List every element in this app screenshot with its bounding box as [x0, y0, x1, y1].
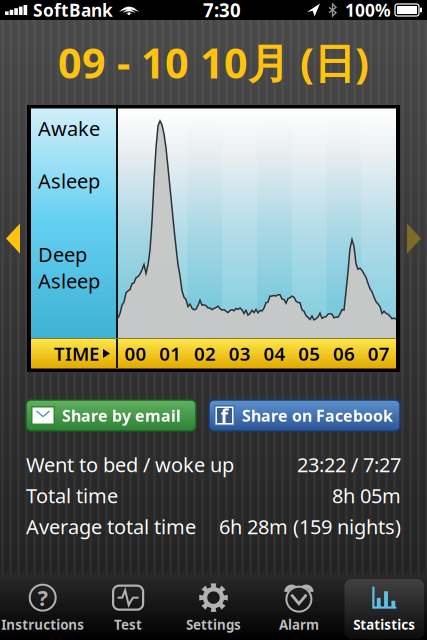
- staticText: 6h 28m (159 nights): [219, 513, 401, 540]
- staticText: 8h 05m: [332, 482, 401, 509]
- button[interactable]: ?: [0, 575, 85, 640]
- staticText: Share by email: [62, 405, 181, 426]
- staticText: 7:30: [203, 0, 241, 22]
- staticText: Test: [114, 616, 142, 633]
- staticText: Statistics: [353, 616, 415, 633]
- staticText: Went to bed / woke up: [26, 451, 234, 478]
- staticText: f: [220, 402, 228, 429]
- staticText: Awake: [38, 115, 100, 142]
- staticText: 06: [333, 341, 355, 366]
- staticText: ?: [38, 583, 48, 612]
- staticText: Asleep: [38, 267, 100, 294]
- staticText: 05: [298, 341, 320, 366]
- staticText: Share on Facebook: [242, 405, 393, 426]
- button[interactable]: Alarm: [256, 575, 342, 640]
- staticText: Average total time: [26, 513, 196, 540]
- staticText: 09 - 10 10月 (日): [58, 35, 369, 90]
- staticText: 07: [368, 341, 390, 366]
- button[interactable]: Statistics: [342, 575, 427, 640]
- staticText: 100%: [345, 0, 391, 21]
- button[interactable]: f: [209, 400, 400, 431]
- staticText: Alarm: [279, 616, 319, 633]
- button[interactable]: Share by email: [26, 400, 196, 431]
- staticText: Deep: [38, 241, 87, 267]
- staticText: 04: [263, 341, 285, 366]
- staticText: 03: [229, 341, 251, 366]
- button[interactable]: Previous night: [0, 223, 26, 253]
- staticText: 00: [124, 341, 146, 366]
- button[interactable]: Test: [85, 575, 171, 640]
- staticText: 01: [159, 341, 181, 366]
- staticText: Total time: [26, 482, 118, 509]
- staticText: TIME: [54, 341, 99, 366]
- staticText: Instructions: [1, 616, 84, 633]
- staticText: Asleep: [38, 168, 100, 194]
- staticText: 02: [194, 341, 216, 366]
- staticText: Settings: [186, 616, 241, 633]
- staticText: SoftBank: [33, 0, 113, 21]
- button[interactable]: Settings: [171, 575, 256, 640]
- staticText: 23:22 / 7:27: [297, 451, 401, 478]
- button[interactable]: Next night: [401, 223, 427, 253]
